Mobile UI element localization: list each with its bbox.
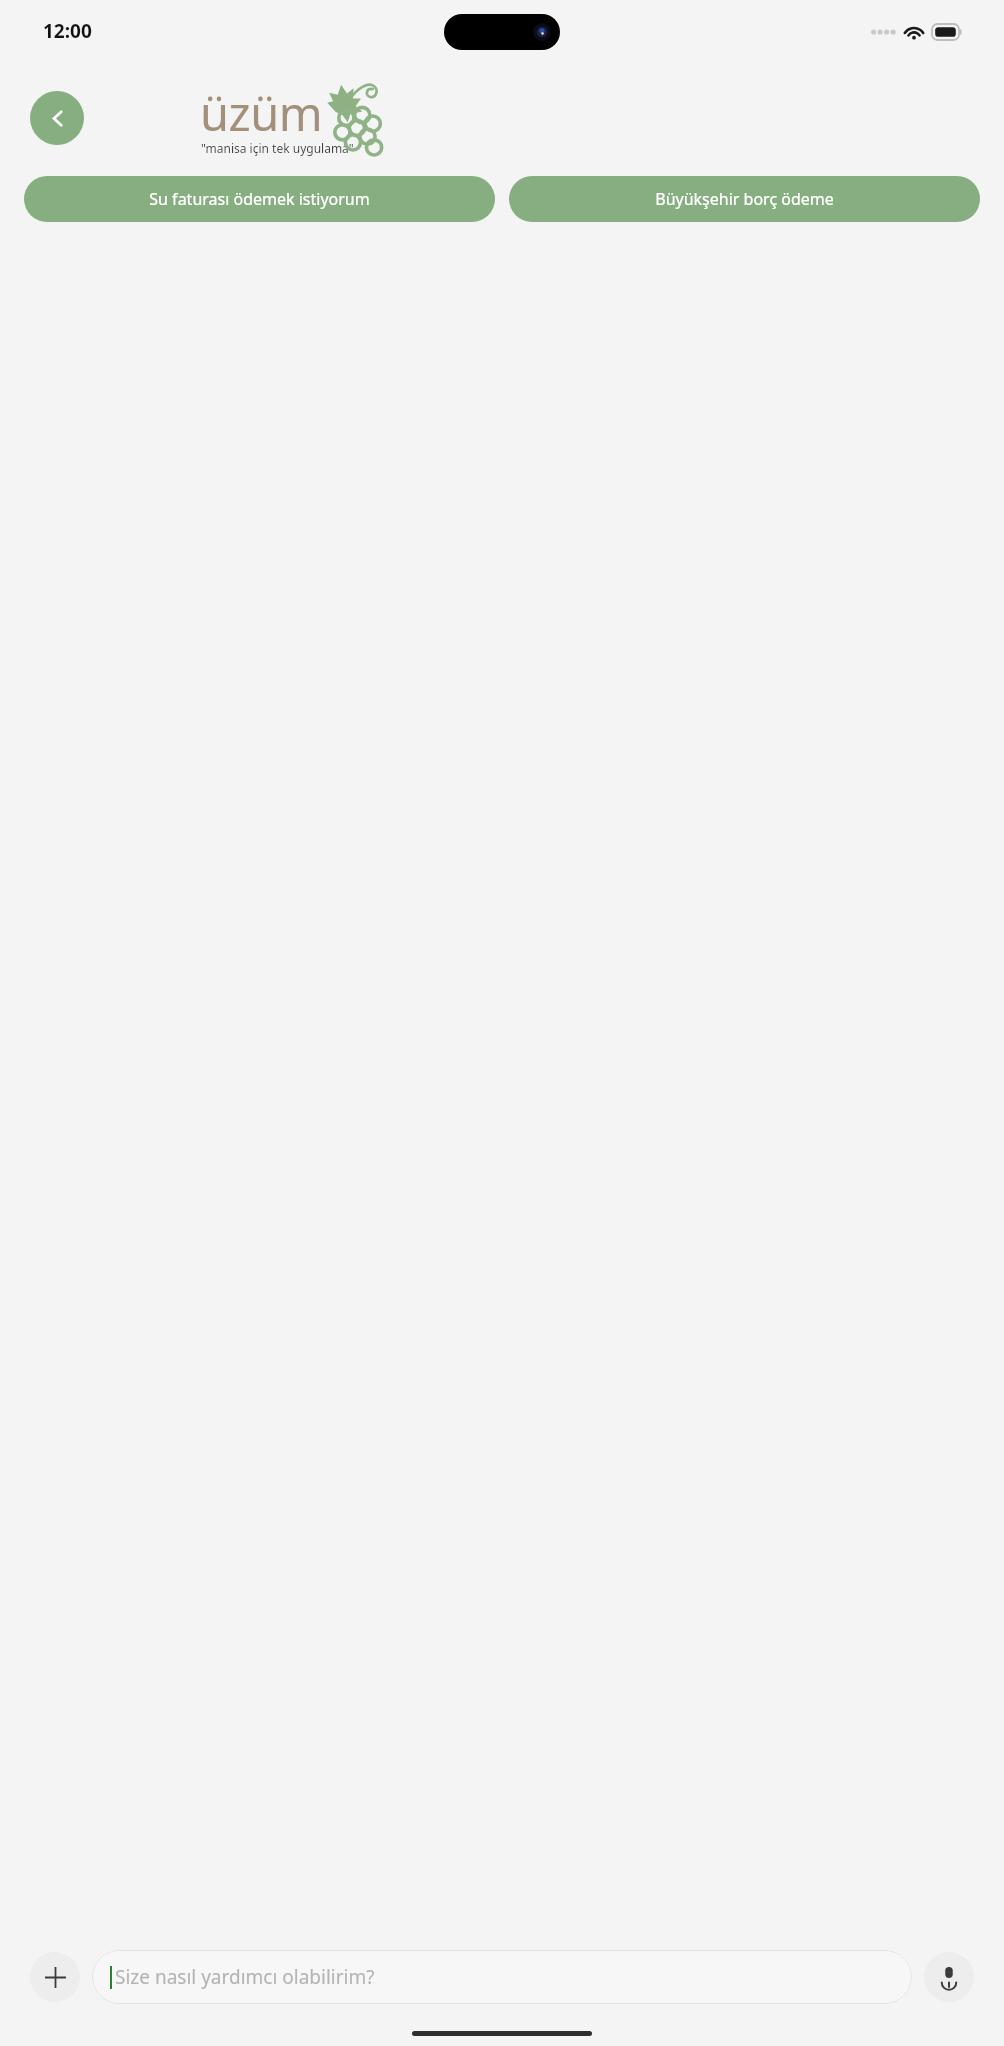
button[interactable]: Add attachment (30, 1952, 80, 2002)
button[interactable]: Voice input (924, 1952, 974, 2002)
button[interactable]: Size nasıl yardımcı olabilirim? (92, 1950, 912, 2004)
button[interactable]: Su faturası ödemek istiyorum (24, 176, 495, 222)
button[interactable]: Büyükşehir borç ödeme (509, 176, 980, 222)
staticText: Size nasıl yardımcı olabilirim? (115, 1964, 375, 1990)
staticText: "manisa için tek uygulama" (201, 140, 354, 156)
button[interactable]: Back (30, 91, 84, 145)
staticText: 12:00 (43, 18, 92, 44)
staticText: Su faturası ödemek istiyorum (149, 188, 370, 210)
staticText: Büyükşehir borç ödeme (655, 188, 834, 210)
staticText: üzüm (200, 81, 323, 145)
